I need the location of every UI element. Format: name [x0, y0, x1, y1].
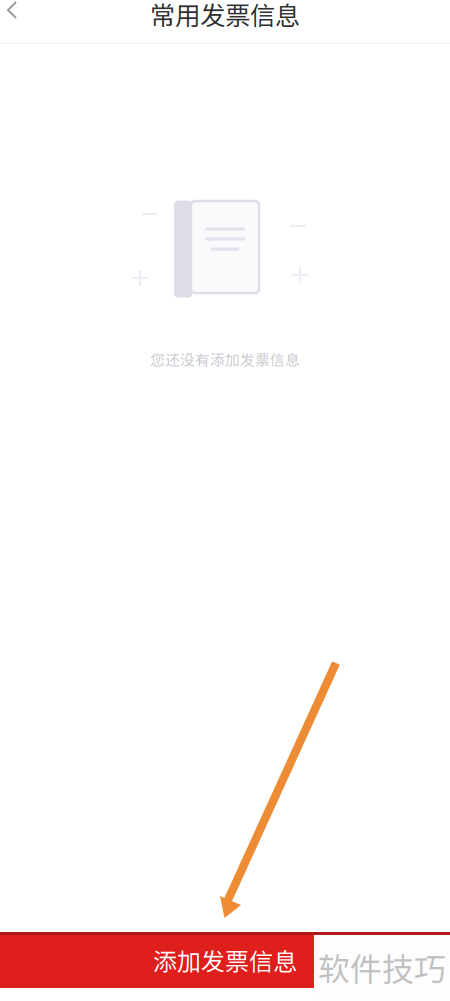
staticText: 软件技巧	[318, 944, 446, 990]
button[interactable]: Back	[0, 0, 32, 28]
button[interactable]: 添加发票信息	[0, 932, 450, 988]
staticText: 添加发票信息	[153, 943, 297, 977]
staticText: 您还没有添加发票信息	[150, 348, 300, 370]
staticText: 常用发票信息	[150, 0, 300, 32]
